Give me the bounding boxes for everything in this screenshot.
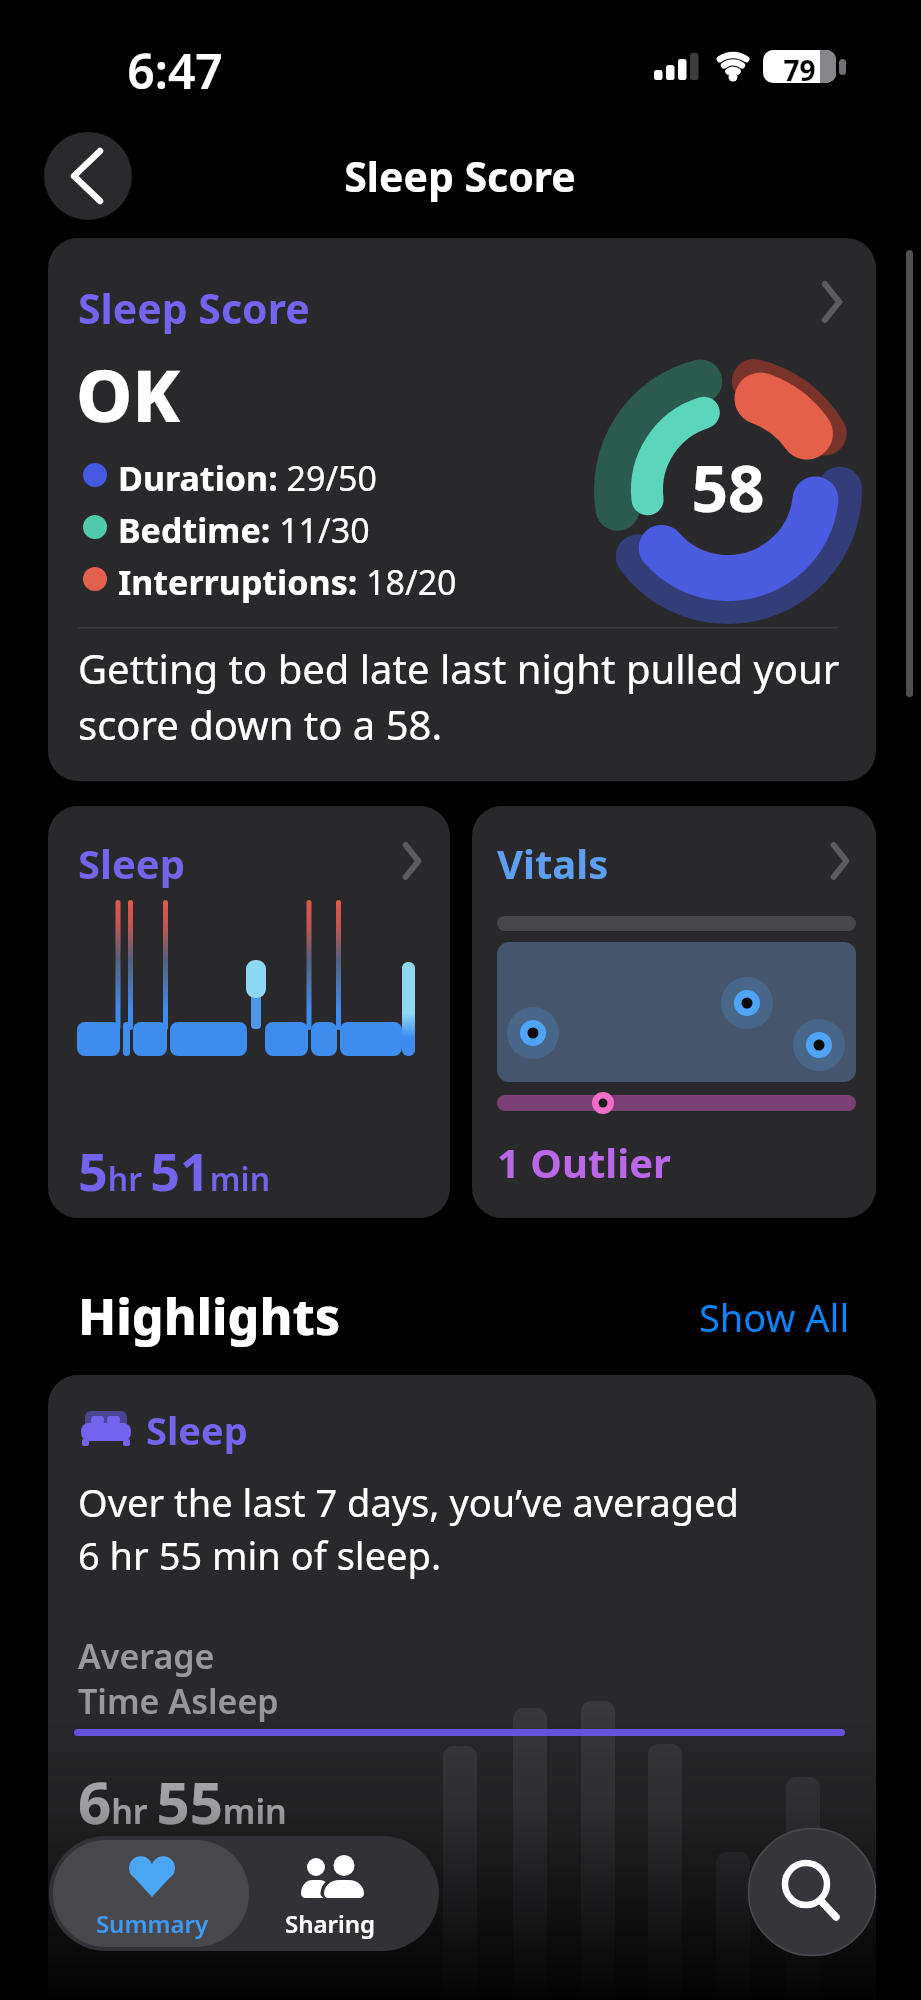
staticText: 5hr 51min — [78, 1135, 271, 1206]
staticText: Highlights — [78, 1282, 341, 1350]
button[interactable] — [48, 1375, 876, 2000]
staticText: 6:47 — [105, 38, 245, 103]
staticText: Sharing — [260, 1907, 400, 1940]
staticText: Getting to bed late last night pulled yo… — [78, 641, 840, 752]
button[interactable] — [48, 806, 450, 1218]
staticText: Bedtime: 11/30 — [118, 507, 370, 553]
staticText: Sleep Score — [78, 280, 310, 336]
staticText: OK — [76, 346, 181, 443]
staticText: Vitals — [497, 836, 609, 890]
staticText: Summary — [82, 1907, 222, 1940]
staticText: 1 Outlier — [497, 1135, 671, 1189]
staticText: Over the last 7 days, you’ve averaged 6 … — [78, 1476, 739, 1582]
staticText: 79 — [763, 51, 836, 89]
staticText: Sleep Score — [260, 148, 660, 204]
staticText: 58 — [628, 444, 828, 531]
button[interactable] — [755, 1835, 871, 1951]
staticText: Sleep — [146, 1404, 248, 1456]
staticText: 6hr 55min — [78, 1762, 287, 1841]
staticText: Interruptions: 18/20 — [118, 559, 457, 605]
button[interactable] — [53, 1840, 249, 1947]
staticText: Average Time Asleep — [78, 1633, 279, 1724]
staticText: Sleep — [78, 836, 185, 890]
button[interactable] — [249, 1840, 439, 1947]
button[interactable]: Show All — [650, 1291, 850, 1341]
button[interactable] — [472, 806, 876, 1218]
button[interactable] — [44, 132, 132, 220]
staticText: Show All — [699, 1291, 850, 1341]
staticText: Duration: 29/50 — [118, 455, 377, 501]
button[interactable] — [48, 238, 876, 781]
